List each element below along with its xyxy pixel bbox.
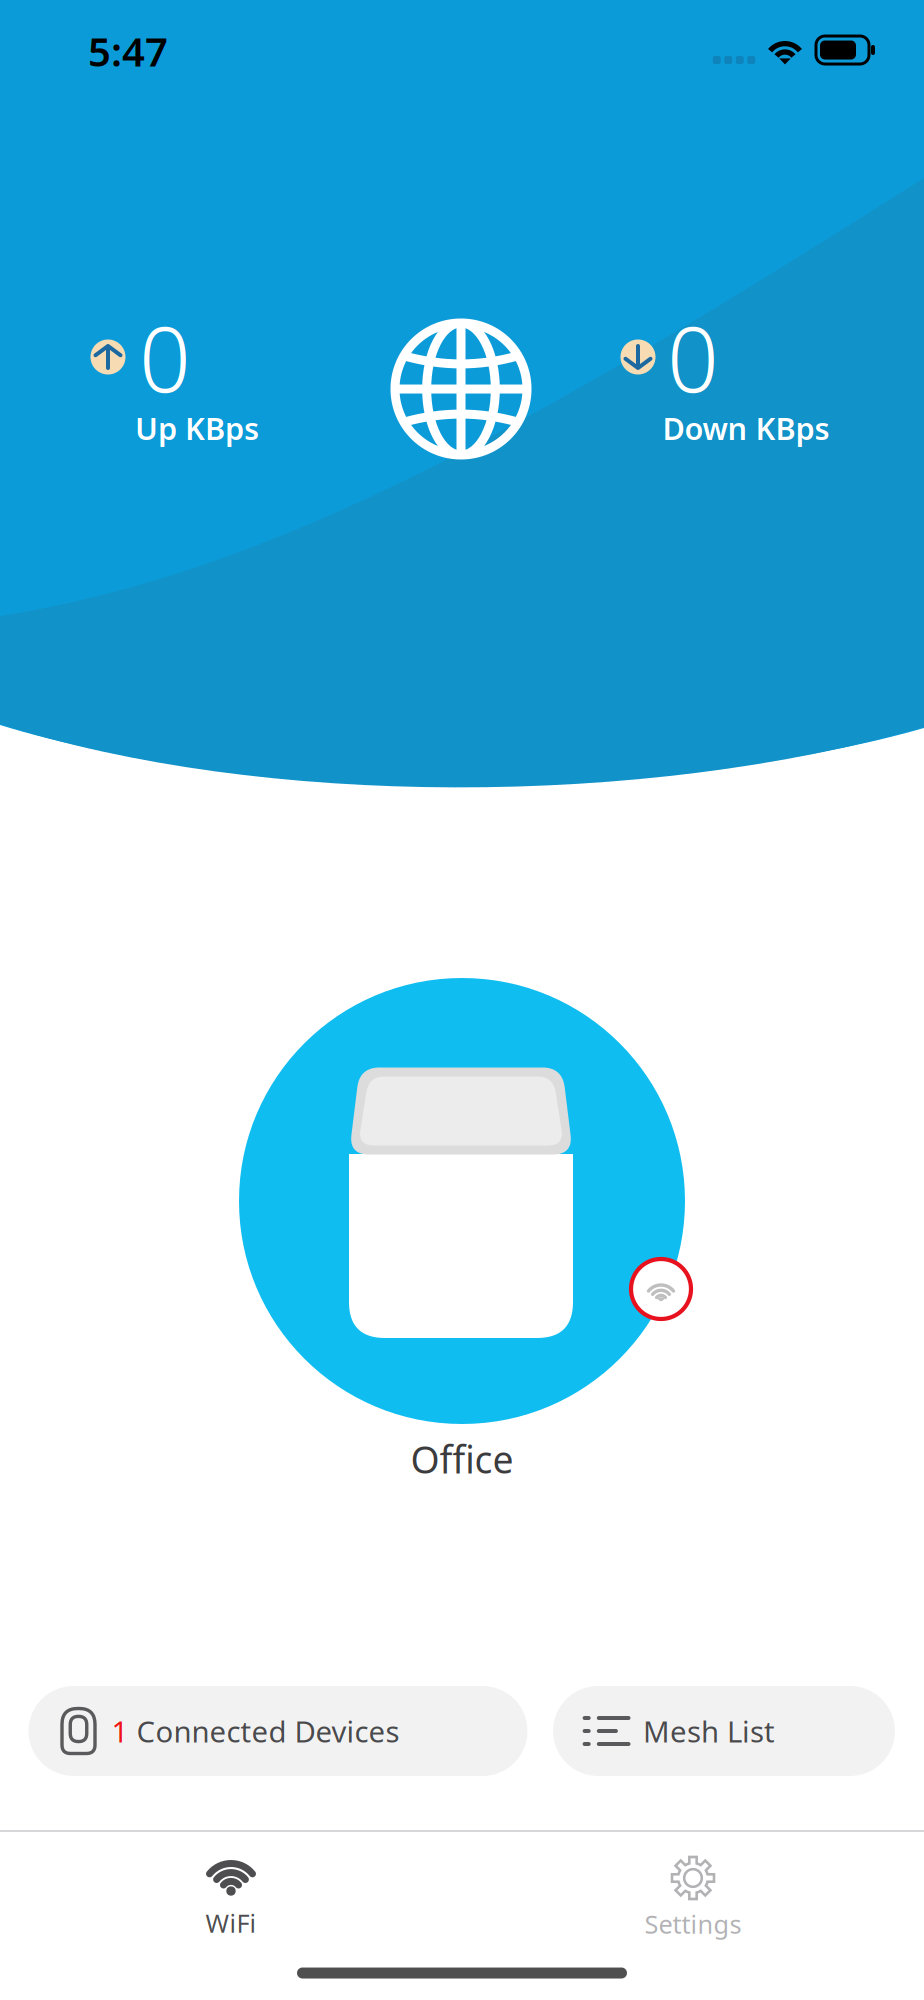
staticText: Settings (644, 1907, 741, 1941)
button[interactable]: Mesh List (553, 1686, 895, 1776)
staticText: Up KBps (135, 408, 259, 448)
staticText: 5:47 (88, 24, 168, 77)
button[interactable]: WiFi (0, 1832, 462, 1962)
staticText: WiFi (205, 1906, 256, 1940)
staticText: Office (410, 1434, 513, 1484)
staticText: 1 (111, 1711, 128, 1750)
staticText: 0 (667, 297, 719, 417)
button[interactable]: Settings (462, 1832, 924, 1962)
staticText: Down KBps (662, 408, 829, 448)
button[interactable]: 1 (28, 1686, 527, 1776)
staticText: 0 (139, 297, 191, 417)
staticText: Connected Devices (128, 1711, 399, 1750)
staticText: Mesh List (643, 1711, 775, 1750)
